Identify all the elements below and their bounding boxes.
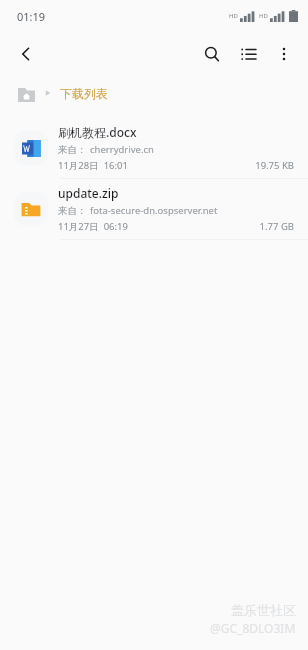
staticText: update.zip	[58, 185, 119, 201]
staticText: 下载列表	[60, 86, 108, 101]
staticText: fota-secure-dn.ospserver.net	[90, 204, 218, 217]
staticText: 01:19	[17, 9, 46, 24]
staticText: 刷机教程.docx	[58, 124, 137, 140]
staticText: 来自：	[58, 205, 87, 217]
button[interactable]: More options	[266, 36, 302, 72]
staticText: 盖乐世社区	[231, 602, 296, 618]
staticText: HD	[259, 12, 268, 20]
button[interactable]: Home	[16, 83, 36, 103]
staticText: @GC_8DLO3IM	[210, 620, 296, 636]
button[interactable]: View mode	[230, 36, 266, 72]
button[interactable]: 刷机教程.docx	[0, 118, 308, 179]
staticText: HD	[229, 12, 238, 20]
button[interactable]: 下载列表	[60, 86, 108, 101]
staticText: 19.75 KB	[255, 159, 294, 172]
staticText: 来自：	[58, 144, 87, 156]
button[interactable]: Back	[8, 36, 44, 72]
staticText: 1.77 GB	[259, 220, 294, 233]
button[interactable]: Search	[194, 36, 230, 72]
staticText: cherrydrive.cn	[90, 143, 154, 156]
staticText: 11月28日 16:01	[58, 159, 128, 172]
staticText: 11月27日 06:19	[58, 220, 128, 233]
button[interactable]: update.zip	[0, 179, 308, 240]
